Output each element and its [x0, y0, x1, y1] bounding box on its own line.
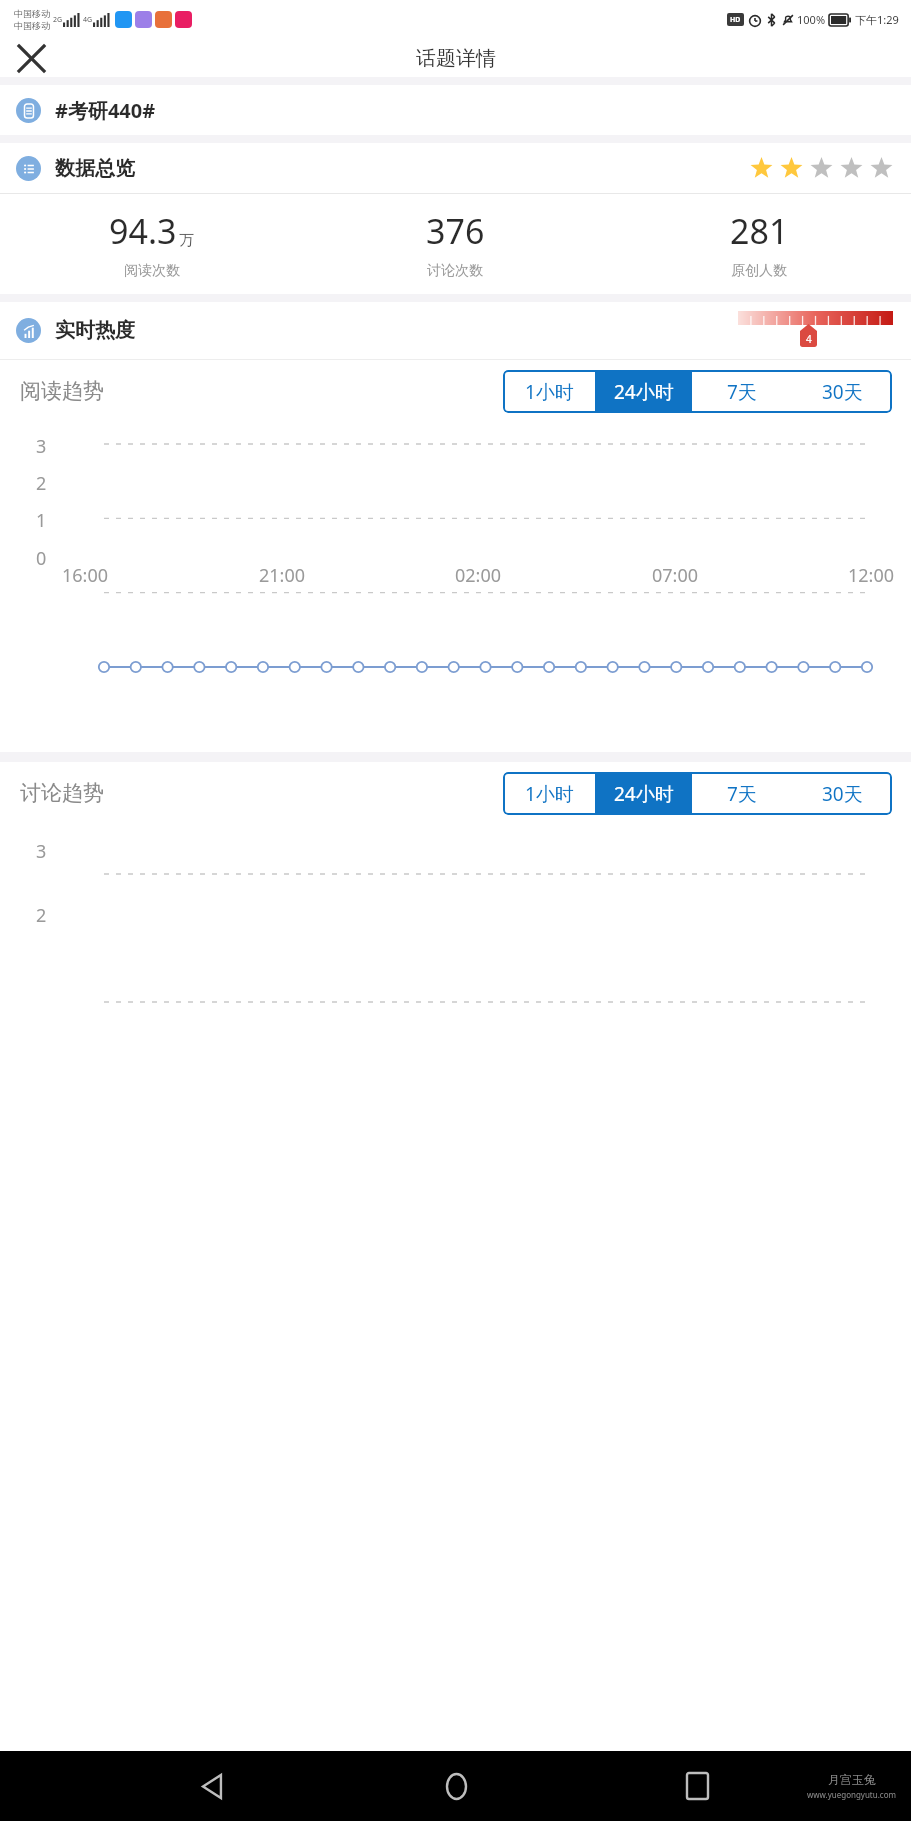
staticText: 1小时: [525, 379, 574, 405]
staticText: 实时热度: [55, 318, 135, 343]
staticText: 3: [36, 839, 47, 864]
staticText: www.yuegongyutu.com: [807, 1789, 897, 1800]
staticText: 281: [730, 208, 789, 254]
staticText: 话题详情: [416, 46, 496, 71]
button[interactable]: 7天: [692, 772, 792, 815]
staticText: 2: [36, 903, 47, 928]
staticText: 24小时: [614, 781, 674, 807]
staticText: 月宫玉兔: [828, 1772, 876, 1787]
button[interactable]: 94.3: [0, 194, 303, 294]
button[interactable]: 30天: [792, 772, 892, 815]
staticText: 02:00: [455, 563, 502, 588]
staticText: 1: [36, 508, 47, 533]
staticText: 中国移动: [14, 8, 50, 19]
staticText: 原创人数: [731, 262, 787, 280]
button[interactable]: 376: [303, 194, 607, 294]
staticText: 万: [179, 231, 194, 250]
staticText: HD: [730, 15, 741, 25]
staticText: 阅读次数: [124, 262, 180, 280]
button[interactable]: Recents: [669, 1758, 725, 1814]
staticText: 1小时: [525, 781, 574, 807]
staticText: 阅读趋势: [20, 378, 104, 404]
staticText: 0: [36, 546, 47, 571]
button[interactable]: 1小时: [503, 370, 595, 413]
staticText: 下午1:29: [855, 12, 899, 27]
staticText: 3: [36, 434, 47, 459]
staticText: 2G: [53, 15, 63, 25]
button[interactable]: 30天: [792, 370, 892, 413]
button[interactable]: Close: [8, 39, 54, 77]
staticText: 讨论次数: [427, 262, 483, 280]
button[interactable]: 24小时: [595, 370, 692, 413]
staticText: 7天: [727, 379, 757, 405]
button[interactable]: #考研440#: [0, 85, 911, 135]
staticText: 24小时: [614, 379, 674, 405]
staticText: 30天: [822, 379, 863, 405]
staticText: 07:00: [652, 563, 699, 588]
staticText: 16:00: [62, 563, 109, 588]
staticText: 30天: [822, 781, 863, 807]
button[interactable]: Home: [428, 1758, 484, 1814]
staticText: 4: [806, 332, 812, 346]
staticText: 讨论趋势: [20, 780, 104, 806]
button[interactable]: 1小时: [503, 772, 595, 815]
staticText: 12:00: [848, 563, 895, 588]
staticText: 4G: [83, 15, 93, 25]
staticText: 100%: [797, 12, 826, 27]
staticText: 7天: [727, 781, 757, 807]
staticText: 21:00: [259, 563, 306, 588]
staticText: #考研440#: [55, 97, 156, 124]
button[interactable]: 24小时: [595, 772, 692, 815]
staticText: 94.3: [109, 208, 177, 254]
button[interactable]: 7天: [692, 370, 792, 413]
staticText: 数据总览: [55, 156, 135, 181]
staticText: 376: [426, 208, 485, 254]
button[interactable]: Back: [186, 1758, 242, 1814]
staticText: 中国移动: [14, 20, 50, 31]
staticText: 2: [36, 471, 47, 496]
button[interactable]: 281: [607, 194, 911, 294]
